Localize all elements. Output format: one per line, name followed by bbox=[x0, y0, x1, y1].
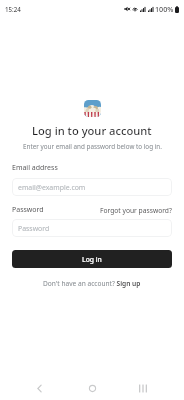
staticText: Enter your email and password below to l… bbox=[23, 142, 162, 151]
staticText: Email address bbox=[12, 163, 58, 173]
staticText: 15:24 bbox=[5, 5, 21, 13]
button[interactable]: Don't have an account? Sign up bbox=[43, 279, 141, 288]
staticText: email@example.com bbox=[18, 183, 86, 192]
staticText: 100% bbox=[155, 4, 174, 14]
staticText: Forgot your password? bbox=[100, 206, 172, 215]
button[interactable]: Password bbox=[12, 219, 172, 237]
staticText: Password bbox=[18, 224, 50, 233]
staticText: Password bbox=[12, 205, 44, 215]
staticText: Log in bbox=[82, 255, 102, 264]
button[interactable]: Recents bbox=[132, 377, 154, 399]
button[interactable]: Home bbox=[81, 377, 103, 399]
button[interactable]: email@example.com bbox=[12, 178, 172, 196]
button[interactable]: Back bbox=[28, 377, 50, 399]
button[interactable]: Log in bbox=[12, 250, 172, 268]
staticText: Log in to your account bbox=[32, 123, 152, 138]
staticText: Don't have an account? Sign up bbox=[43, 279, 141, 288]
button[interactable]: Forgot your password? bbox=[100, 206, 172, 215]
